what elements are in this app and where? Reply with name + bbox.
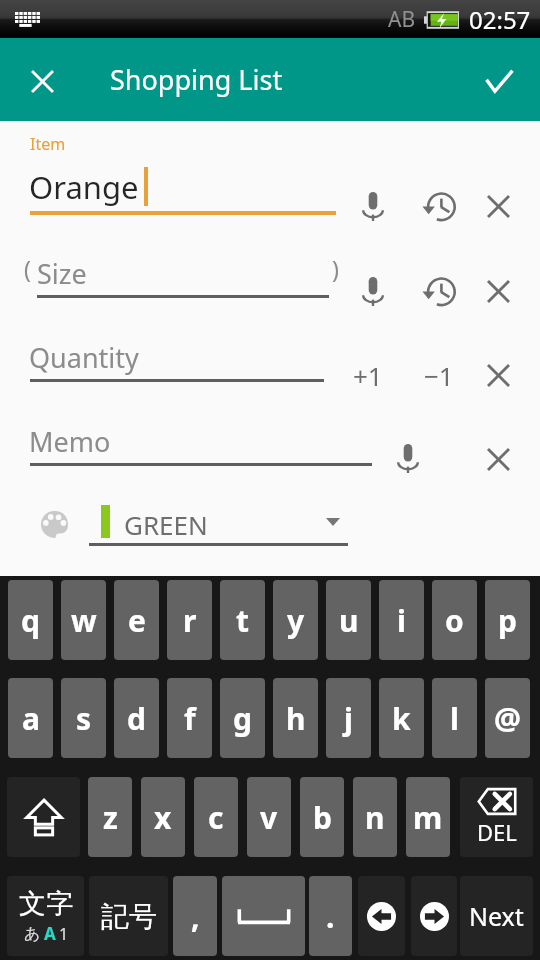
button[interactable]: f [167,678,212,758]
button[interactable]: Clear size [472,265,524,317]
button[interactable]: Shift [7,777,80,857]
staticText: AB [388,5,416,34]
staticText: Memo [29,423,111,460]
staticText: w [71,600,97,641]
button[interactable]: d [114,678,159,758]
button[interactable]: Voice input for item [347,180,399,232]
button[interactable]: l [432,678,477,758]
staticText: g [233,698,252,739]
staticText: n [365,797,385,838]
button[interactable]: Pick colour [32,502,76,546]
staticText: ) [332,253,339,284]
button[interactable]: GREEN [89,498,348,548]
button[interactable]: q [8,580,53,660]
button[interactable]: r [167,580,212,660]
staticText: Size [37,255,87,292]
button[interactable]: w [61,580,106,660]
staticText: b [313,797,332,838]
staticText: s [76,698,92,739]
button[interactable]: i [379,580,424,660]
button[interactable]: Size history [413,266,465,318]
button[interactable]: c [194,777,238,857]
button[interactable]: Clear quantity [472,349,524,401]
button[interactable]: @ [485,678,530,758]
button[interactable]: Save [471,41,527,121]
button[interactable]: y [273,580,318,660]
staticText: i [397,600,406,641]
button[interactable]: g [220,678,265,758]
button[interactable]: Cursor left [358,876,405,956]
staticText: Orange [29,166,139,208]
staticText: Shopping List [110,61,283,98]
button[interactable]: Close [0,41,84,121]
button[interactable]: Item history [413,181,465,233]
staticText: u [339,600,359,641]
button[interactable]: Change input mode [7,876,84,956]
button[interactable]: k [379,678,424,758]
button[interactable]: p [485,580,530,660]
button[interactable]: Clear memo [472,433,524,485]
button[interactable]: , [173,876,217,956]
button[interactable]: Symbols [89,876,168,956]
button[interactable]: m [406,777,450,857]
button[interactable]: Delete [460,777,533,857]
button[interactable]: v [247,777,291,857]
staticText: Quantity [29,339,139,376]
staticText: x [154,797,172,838]
staticText: c [208,797,224,838]
button[interactable]: Space [222,876,305,956]
staticText: +1 [353,358,383,393]
staticText: o [445,600,464,641]
staticText: l [450,698,459,739]
staticText: Next [469,899,524,933]
staticText: h [286,698,306,739]
button[interactable]: s [61,678,106,758]
button[interactable]: a [8,678,53,758]
staticText: あ [24,924,41,944]
button[interactable]: j [326,678,371,758]
staticText: z [103,797,118,838]
staticText: DEL [477,817,517,847]
button[interactable]: Cursor right [411,876,457,956]
button[interactable]: n [353,777,397,857]
staticText: m [413,797,443,838]
staticText: −1 [424,358,454,393]
staticText: . [326,896,335,937]
staticText: e [128,600,146,641]
button[interactable]: Next [460,876,533,956]
staticText: d [127,698,146,739]
staticText: , [191,896,200,937]
button[interactable]: h [273,678,318,758]
button[interactable]: t [220,580,265,660]
staticText: j [344,698,353,739]
staticText: a [22,698,40,739]
staticText: t [236,600,250,641]
staticText: p [498,600,517,641]
staticText: f [184,698,196,739]
button[interactable]: b [300,777,344,857]
button[interactable]: u [326,580,371,660]
staticText: k [392,698,411,739]
staticText: 記号 [101,899,157,934]
staticText: GREEN [124,507,208,542]
button[interactable]: . [309,876,352,956]
staticText: 1 [59,923,69,945]
staticText: 文字 [19,887,73,921]
button[interactable]: o [432,580,477,660]
staticText: @ [494,698,521,739]
staticText: v [260,797,278,838]
button[interactable]: x [141,777,185,857]
button[interactable]: e [114,580,159,660]
staticText: A [44,922,56,945]
button[interactable]: +1 [340,349,396,401]
staticText: q [21,600,40,641]
staticText: 02:57 [469,3,531,36]
staticText: ( [24,253,31,284]
staticText: y [287,600,305,641]
staticText: r [183,600,197,641]
button[interactable]: Clear item [472,180,524,232]
button[interactable]: Voice input for size [347,265,399,317]
button[interactable]: −1 [411,349,467,401]
button[interactable]: Voice input for memo [382,432,434,484]
button[interactable]: z [88,777,132,857]
